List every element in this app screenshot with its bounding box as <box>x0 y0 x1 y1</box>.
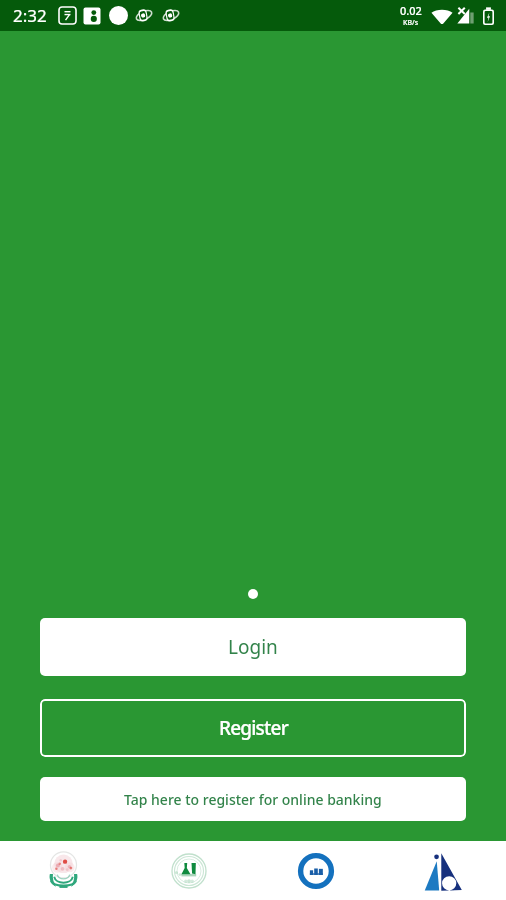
button[interactable]: IDBI Bank <box>379 841 506 900</box>
button[interactable]: Tap here to register for online banking <box>40 777 466 821</box>
button[interactable]: Government of India <box>0 841 126 900</box>
button[interactable]: Register <box>40 699 466 757</box>
staticText: KB/s <box>403 18 419 28</box>
staticText: Tap here to register for online banking <box>124 790 382 809</box>
staticText: Register <box>219 715 288 741</box>
button[interactable]: Login <box>40 618 466 676</box>
staticText: Login <box>228 634 278 660</box>
button[interactable]: UPI payments <box>252 841 379 900</box>
staticText: 2:32 <box>13 4 47 27</box>
button[interactable]: Reserve Bank of India <box>126 841 252 900</box>
staticText: 0.02 <box>400 3 422 18</box>
